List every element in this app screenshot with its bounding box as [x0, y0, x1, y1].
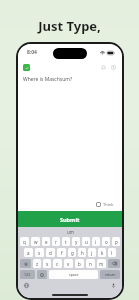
button[interactable]: s: [35, 248, 44, 257]
staticText: d: [49, 250, 52, 256]
staticText: 123: [24, 272, 31, 277]
staticText: 8:04: [27, 49, 37, 56]
button[interactable]: Profile: [109, 63, 117, 71]
button[interactable]: y: [72, 237, 80, 246]
button[interactable]: u: [82, 237, 90, 246]
button[interactable]: e: [42, 237, 50, 246]
staticText: h: [81, 250, 84, 256]
button[interactable]: g: [68, 248, 76, 257]
button[interactable]: f: [57, 248, 66, 257]
staticText: space: [69, 272, 79, 277]
staticText: v: [67, 261, 70, 267]
button[interactable]: Submit: [18, 211, 122, 227]
button[interactable]: l: [108, 248, 116, 257]
button[interactable]: v: [64, 259, 73, 268]
staticText: q: [23, 239, 26, 245]
button[interactable]: z: [33, 259, 41, 268]
staticText: x: [46, 261, 49, 267]
button[interactable]: t: [62, 237, 70, 246]
button[interactable]: h: [78, 248, 86, 257]
button[interactable]: 123: [20, 270, 35, 279]
staticText: f: [61, 250, 63, 256]
button[interactable]: b: [75, 259, 84, 268]
staticText: w: [34, 239, 38, 245]
button[interactable]: x: [43, 259, 51, 268]
button[interactable]: d: [46, 248, 55, 257]
staticText: u: [85, 239, 88, 245]
button[interactable]: o: [102, 237, 110, 246]
staticText: p: [115, 239, 118, 245]
button[interactable]: r: [52, 237, 60, 246]
button[interactable]: Shift: [20, 259, 31, 268]
button[interactable]: m: [97, 259, 106, 268]
staticText: j: [91, 250, 93, 256]
staticText: Submit: [60, 216, 80, 223]
button[interactable]: App icon: [23, 64, 30, 71]
staticText: z: [36, 261, 39, 267]
staticText: um: [67, 229, 74, 235]
staticText: a: [27, 250, 30, 256]
staticText: n: [89, 261, 92, 267]
staticText: g: [71, 250, 74, 256]
staticText: m: [99, 261, 104, 267]
button[interactable]: Voice input: [110, 282, 117, 289]
staticText: r: [55, 239, 57, 245]
staticText: Think: [103, 202, 114, 207]
button[interactable]: p: [112, 237, 120, 246]
staticText: s: [38, 250, 41, 256]
button[interactable]: k: [98, 248, 106, 257]
staticText: e: [45, 239, 48, 245]
button[interactable]: w: [31, 237, 40, 246]
staticText: y: [75, 239, 78, 245]
staticText: t: [65, 239, 67, 245]
staticText: Just Type,: [38, 17, 101, 35]
button[interactable]: j: [88, 248, 96, 257]
staticText: return: [105, 272, 116, 277]
button[interactable]: c: [53, 259, 62, 268]
button[interactable]: Notifications: [99, 63, 107, 71]
staticText: k: [101, 250, 104, 256]
staticText: Where is Maschsum?: [23, 76, 73, 83]
staticText: b: [78, 261, 81, 267]
button[interactable]: return: [100, 270, 120, 279]
staticText: c: [56, 261, 59, 267]
button[interactable]: Change keyboard: [23, 282, 30, 289]
button[interactable]: Emoji: [37, 270, 47, 279]
button[interactable]: space: [49, 270, 98, 279]
button[interactable]: q: [20, 237, 29, 246]
button[interactable]: n: [86, 259, 95, 268]
button[interactable]: Think: [94, 200, 116, 209]
staticText: o: [105, 239, 108, 245]
button[interactable]: Backspace: [108, 259, 120, 268]
staticText: l: [111, 250, 113, 256]
button[interactable]: a: [24, 248, 33, 257]
staticText: i: [95, 239, 97, 245]
button[interactable]: i: [92, 237, 100, 246]
